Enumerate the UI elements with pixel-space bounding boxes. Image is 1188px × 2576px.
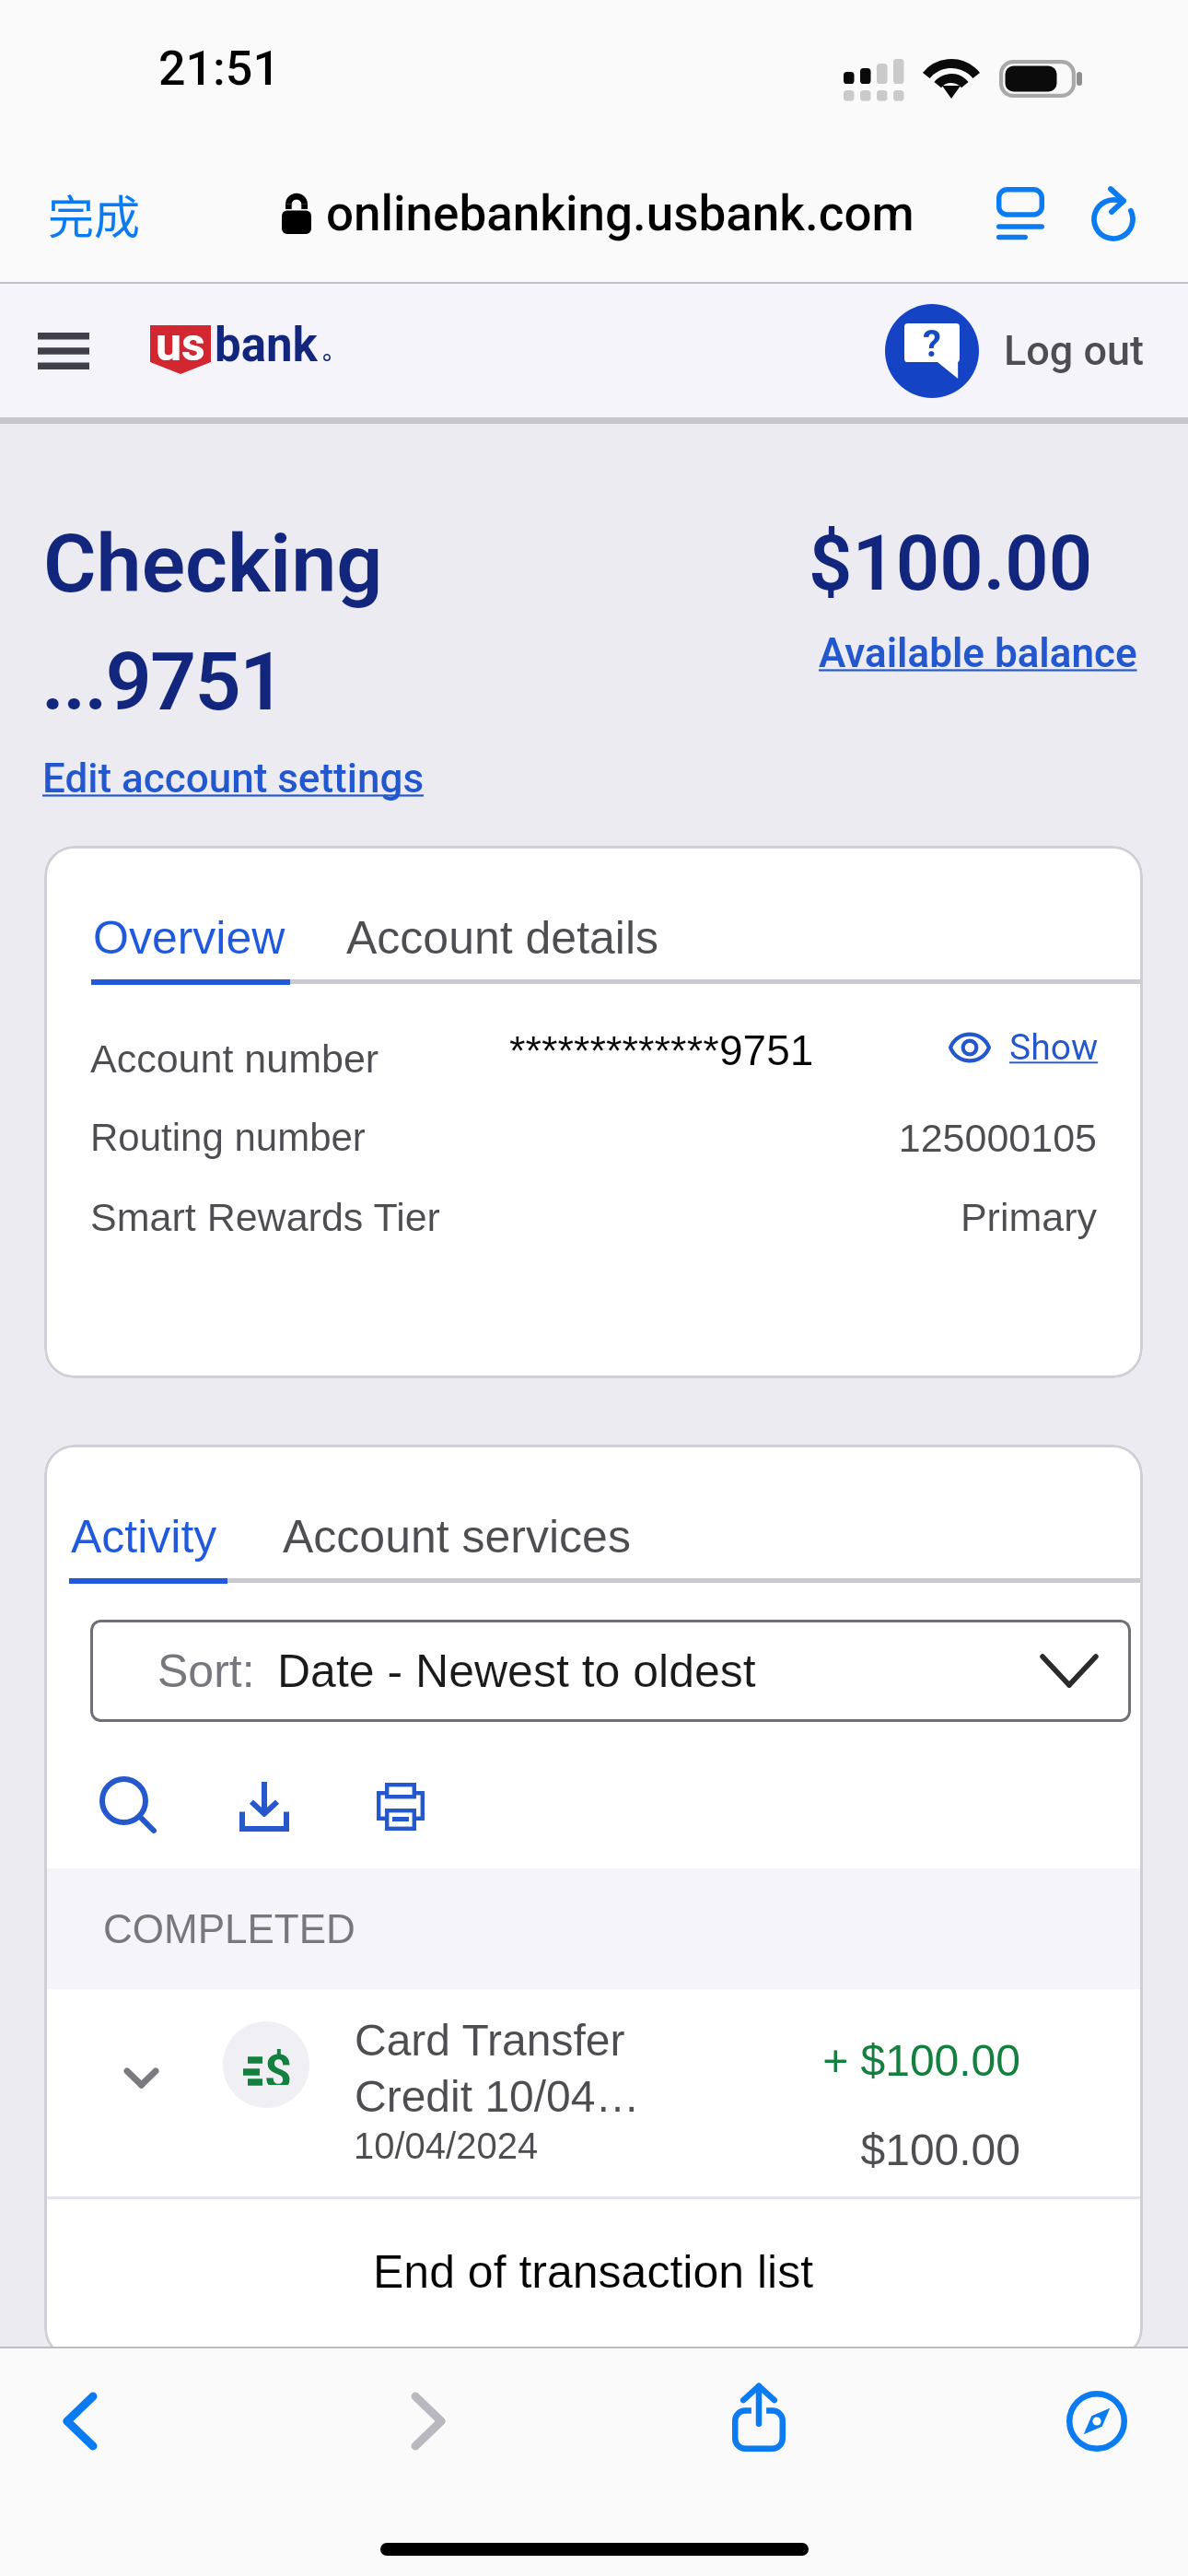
staticText: Available balance (819, 629, 1137, 677)
staticText: Account number (90, 1036, 379, 1081)
staticText: Overview (93, 912, 285, 964)
staticText: bank (215, 318, 318, 373)
staticText: $ (264, 2044, 292, 2085)
staticText: 21:51 (158, 41, 280, 97)
button[interactable]: Search transactions (89, 1766, 167, 1844)
staticText: ...9751 (41, 634, 285, 729)
staticText: $100.00 (809, 519, 1093, 608)
button[interactable]: Print transactions (362, 1768, 439, 1845)
button[interactable]: Show (949, 1026, 1099, 1069)
staticText: us (156, 318, 205, 372)
staticText: 10/04/2024 (354, 2125, 539, 2167)
button[interactable]: Sort: (90, 1620, 1131, 1722)
button[interactable]: Download transactions (226, 1768, 303, 1845)
staticText: Primary (44, 1195, 1097, 1239)
staticText: End of transaction list (373, 2246, 814, 2298)
staticText: Date - Newest to oldest (277, 1645, 756, 1697)
button[interactable]: ? (885, 284, 1145, 417)
staticText: Credit 10/04… (355, 2072, 640, 2122)
button[interactable]: Back (29, 2371, 131, 2472)
staticText: Edit account settings (42, 755, 425, 802)
staticText: COMPLETED (103, 1906, 355, 1951)
staticText: ? (923, 322, 941, 366)
staticText: 125000105 (44, 1116, 1097, 1160)
staticText: $100.00 (44, 2125, 1020, 2175)
staticText: Activity (71, 1511, 217, 1563)
button[interactable]: Menu (17, 284, 111, 417)
button[interactable]: Share (708, 2367, 809, 2468)
staticText: Smart Rewards Tier (90, 1195, 440, 1239)
button[interactable]: Reload page (1071, 143, 1172, 284)
staticText: Card Transfer (355, 2016, 625, 2066)
staticText: Sort: (157, 1645, 255, 1697)
staticText: + $100.00 (44, 2036, 1020, 2086)
staticText: Account details (346, 912, 659, 964)
button[interactable]: Forward (378, 2371, 479, 2472)
button[interactable]: Account services (283, 1511, 631, 1563)
button[interactable]: Overview (93, 912, 285, 964)
button[interactable]: Reader view (970, 143, 1071, 284)
staticText: Account services (283, 1511, 631, 1563)
button[interactable]: Available balance (819, 629, 1137, 677)
staticText: Log out (1004, 326, 1145, 375)
button[interactable]: Tabs (1046, 2371, 1147, 2472)
staticText: Checking (43, 516, 383, 611)
button[interactable]: Edit account settings (42, 755, 425, 802)
staticText: Show (1009, 1026, 1099, 1069)
button[interactable]: Activity (71, 1511, 217, 1563)
staticText: Routing number (90, 1116, 366, 1159)
staticText: onlinebanking.usbank.com (326, 185, 914, 242)
staticText: 9751 (719, 1026, 814, 1073)
staticText: ************* (509, 1027, 719, 1073)
button[interactable]: $ (44, 1989, 1143, 2187)
button[interactable]: 完成 (20, 143, 168, 284)
staticText: 完成 (48, 181, 140, 247)
button[interactable]: Account details (346, 912, 659, 964)
